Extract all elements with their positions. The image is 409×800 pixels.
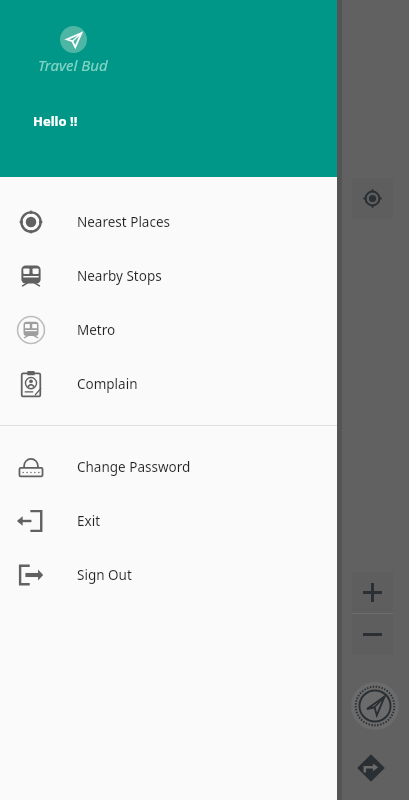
staticText: Change Password — [77, 458, 191, 476]
staticText: Exit — [77, 512, 101, 530]
button[interactable]: Nearby Stops — [0, 249, 337, 303]
button[interactable]: Nearest Places — [0, 195, 337, 249]
staticText: Hello !! — [33, 112, 78, 130]
staticText: Nearby Stops — [77, 267, 162, 285]
button[interactable]: My location — [352, 178, 393, 219]
button[interactable]: Zoom in — [352, 572, 393, 613]
button[interactable]: Complain — [0, 357, 337, 411]
button[interactable]: Sign Out — [0, 548, 337, 602]
button[interactable]: Change Password — [0, 440, 337, 494]
button[interactable]: Navigate — [351, 682, 399, 730]
staticText: Sign Out — [77, 566, 132, 584]
staticText: Metro — [77, 321, 116, 339]
staticText: Complain — [77, 375, 138, 393]
button[interactable]: Exit — [0, 494, 337, 548]
button[interactable]: Zoom out — [352, 614, 393, 655]
staticText: Nearest Places — [77, 213, 171, 231]
staticText: Travel Bud — [38, 55, 108, 75]
button[interactable]: Metro — [0, 303, 337, 357]
button[interactable]: Directions — [355, 752, 387, 784]
